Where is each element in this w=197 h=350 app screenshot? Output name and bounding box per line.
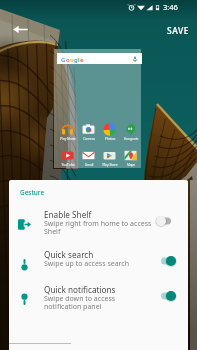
staticText: Hangouts [120, 137, 142, 141]
button[interactable]: Quick notifications [9, 284, 188, 319]
button[interactable]: Enable Shelf [9, 209, 188, 244]
staticText: Enable Shelf [44, 209, 92, 220]
staticText: l [78, 56, 80, 64]
staticText: o [66, 56, 70, 64]
staticText: Gesture [20, 188, 45, 197]
button[interactable]: Off [155, 214, 177, 228]
staticText: Gmail [78, 163, 100, 167]
staticText: Maps [120, 163, 142, 167]
staticText: e [80, 56, 84, 64]
staticText: Quick notifications [44, 284, 116, 295]
staticText: g [74, 56, 78, 64]
staticText: Swipe down to access notification panel [44, 294, 162, 311]
staticText: Play Music [57, 137, 79, 141]
staticText: G [61, 56, 66, 64]
staticText: Photos [99, 137, 121, 141]
button[interactable]: Back [9, 18, 31, 40]
button[interactable]: SAVE [163, 21, 193, 41]
button[interactable]: On [155, 254, 177, 268]
staticText: o [70, 56, 74, 64]
staticText: YouTube [57, 163, 79, 167]
button[interactable]: On [155, 289, 177, 303]
button[interactable]: Quick search [9, 249, 188, 284]
staticText: Play Store [99, 163, 121, 167]
staticText: Quick search [44, 249, 94, 260]
staticText: SAVE [167, 25, 189, 37]
staticText: Swipe up to access search [44, 259, 162, 269]
staticText: 3:46 [163, 2, 178, 12]
staticText: Swipe right from home to access Shelf [44, 219, 162, 236]
staticText: Camera [78, 137, 100, 141]
